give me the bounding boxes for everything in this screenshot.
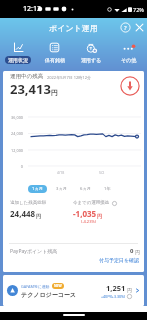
staticText: 円 bbox=[97, 213, 102, 219]
staticText: 付与予定日を確認 bbox=[99, 257, 140, 263]
staticText: 運用する bbox=[81, 57, 102, 63]
staticText: 円 bbox=[126, 287, 132, 293]
button[interactable]: 付与予定日を確認 bbox=[99, 257, 140, 263]
button[interactable]: Withdraw bbox=[120, 76, 140, 96]
button[interactable]: GAFAM等に連動 bbox=[3, 275, 144, 306]
staticText: 2022年5月7日 12時12分 bbox=[47, 75, 91, 80]
staticText: ポイント運用 bbox=[49, 23, 98, 33]
staticText: NEW bbox=[54, 284, 62, 288]
staticText: 0 bbox=[20, 164, 23, 169]
staticText: 運用中の残高 bbox=[10, 73, 44, 80]
staticText: 36,000 bbox=[11, 115, 23, 120]
button[interactable]: 6ヵ月 bbox=[76, 185, 95, 193]
button[interactable]: About profit bbox=[112, 201, 117, 206]
button[interactable]: 運用状況 bbox=[0, 36, 36, 71]
staticText: ? bbox=[124, 24, 127, 32]
staticText: PayPayポイント残高 bbox=[10, 248, 58, 255]
staticText: -1,035 bbox=[73, 208, 97, 219]
staticText: 運用状況 bbox=[8, 57, 28, 63]
staticText: 円 bbox=[36, 213, 41, 219]
button[interactable]: その他 bbox=[110, 36, 147, 71]
staticText: 12:12 bbox=[23, 4, 41, 14]
staticText: 4/18 bbox=[57, 170, 65, 175]
button[interactable]: 保有銘柄 bbox=[36, 36, 73, 71]
staticText: 6ヵ月 bbox=[80, 186, 91, 192]
staticText: 0 bbox=[130, 247, 134, 255]
button[interactable]: 1年 bbox=[100, 185, 115, 193]
button[interactable]: 3ヵ月 bbox=[52, 185, 71, 193]
staticText: テクノロジーコース bbox=[21, 291, 76, 299]
staticText: 追加した残高総額 bbox=[10, 200, 47, 206]
button[interactable]: Help bbox=[119, 21, 132, 34]
staticText: 5/2 bbox=[99, 170, 105, 175]
staticText: 3ヵ月 bbox=[56, 186, 67, 192]
staticText: 1年 bbox=[104, 186, 111, 192]
staticText: +40円(+3.30%) bbox=[101, 294, 126, 299]
staticText: 12,000 bbox=[11, 148, 23, 153]
staticText: 24,448 bbox=[10, 208, 36, 219]
staticText: その他 bbox=[121, 57, 137, 63]
staticText: 23,413 bbox=[10, 80, 51, 98]
staticText: 円 bbox=[51, 89, 58, 97]
staticText: 1ヵ月 bbox=[32, 186, 43, 192]
button[interactable]: 運用する bbox=[73, 36, 110, 71]
staticText: 1,251 bbox=[106, 283, 126, 293]
staticText: 円 bbox=[134, 249, 140, 255]
staticText: GAFAM等に連動 bbox=[21, 284, 50, 289]
button[interactable]: 1ヵ月 bbox=[28, 185, 47, 193]
staticText: 24,000 bbox=[11, 131, 23, 136]
button[interactable]: Close bbox=[133, 21, 146, 34]
staticText: (-4.23%) bbox=[81, 219, 96, 224]
staticText: 今までの運用損益 bbox=[73, 200, 110, 206]
staticText: 保有銘柄 bbox=[45, 57, 65, 63]
staticText: 72% bbox=[133, 6, 144, 13]
